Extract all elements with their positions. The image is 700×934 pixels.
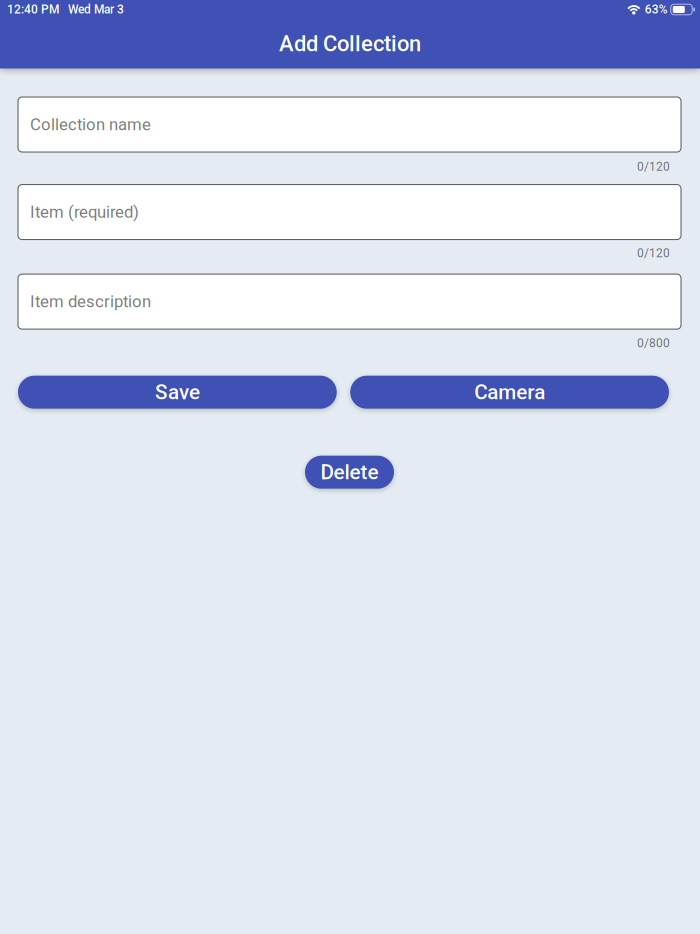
button[interactable]: Item (required)	[18, 185, 681, 240]
staticText: Save	[155, 380, 200, 404]
button[interactable]: Collection name	[18, 97, 681, 152]
staticText: 0/800	[637, 336, 670, 350]
staticText: Item description	[30, 292, 151, 311]
staticText: 12:40 PM	[7, 2, 59, 17]
staticText: Collection name	[30, 115, 151, 134]
staticText: 63%	[645, 2, 668, 17]
staticText: Delete	[320, 460, 378, 484]
button[interactable]: Item description	[18, 274, 681, 329]
staticText: Camera	[474, 380, 545, 404]
staticText: 0/120	[637, 246, 670, 260]
staticText: 0/120	[637, 159, 670, 174]
button[interactable]: Delete	[305, 456, 394, 489]
staticText: Add Collection	[279, 31, 421, 57]
staticText: Wed Mar 3	[68, 2, 124, 17]
button[interactable]: Save	[18, 376, 337, 409]
button[interactable]: Camera	[350, 376, 669, 409]
staticText: Item (required)	[30, 202, 139, 222]
